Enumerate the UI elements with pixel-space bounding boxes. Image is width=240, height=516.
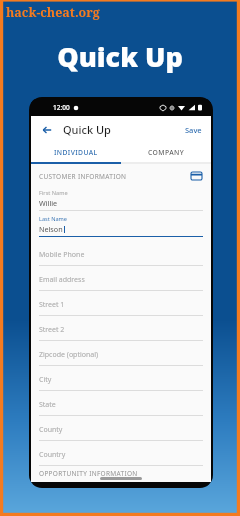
staticText: Email address	[39, 275, 85, 285]
staticText: CUSTOMER INFORMATION	[39, 172, 127, 181]
button[interactable]: Email address	[39, 266, 203, 291]
button[interactable]: State	[39, 391, 203, 416]
staticText: Nelson	[39, 224, 63, 234]
staticText: Mobile Phone	[39, 250, 85, 260]
button[interactable]: Mobile Phone	[39, 241, 203, 266]
staticText: INDIVIDUAL	[54, 148, 98, 157]
button[interactable]: Street 1	[39, 291, 203, 316]
staticText: Willie	[39, 198, 58, 208]
button[interactable]: Country	[39, 441, 203, 466]
staticText: City	[39, 375, 52, 385]
staticText: OPPORTUNITY INFORMATION	[39, 469, 138, 478]
button[interactable]: Back	[38, 121, 55, 138]
staticText: Quick Up	[63, 122, 111, 137]
button[interactable]: Save	[180, 121, 207, 139]
staticText: 12:00	[53, 103, 70, 112]
staticText: hack-cheat.org	[6, 4, 100, 21]
staticText: State	[39, 400, 56, 410]
staticText: Country	[39, 450, 66, 460]
button[interactable]: Zipcode (optional)	[39, 341, 203, 366]
staticText: Last Name	[39, 215, 67, 223]
staticText: Save	[185, 125, 202, 135]
button[interactable]: County	[39, 416, 203, 441]
button[interactable]: Scan card	[189, 169, 203, 183]
button[interactable]: First Name	[39, 186, 203, 211]
staticText: Street 2	[39, 325, 65, 335]
button[interactable]: INDIVIDUAL	[31, 143, 121, 162]
staticText: Street 1	[39, 300, 65, 310]
button[interactable]: Last Name	[39, 211, 203, 237]
staticText: COMPANY	[148, 148, 185, 157]
staticText: First Name	[39, 189, 68, 197]
staticText: Zipcode (optional)	[39, 350, 99, 360]
button[interactable]: Street 2	[39, 316, 203, 341]
button[interactable]: City	[39, 366, 203, 391]
staticText: County	[39, 425, 63, 435]
staticText: Quick Up	[0, 38, 240, 75]
button[interactable]: COMPANY	[121, 143, 211, 162]
